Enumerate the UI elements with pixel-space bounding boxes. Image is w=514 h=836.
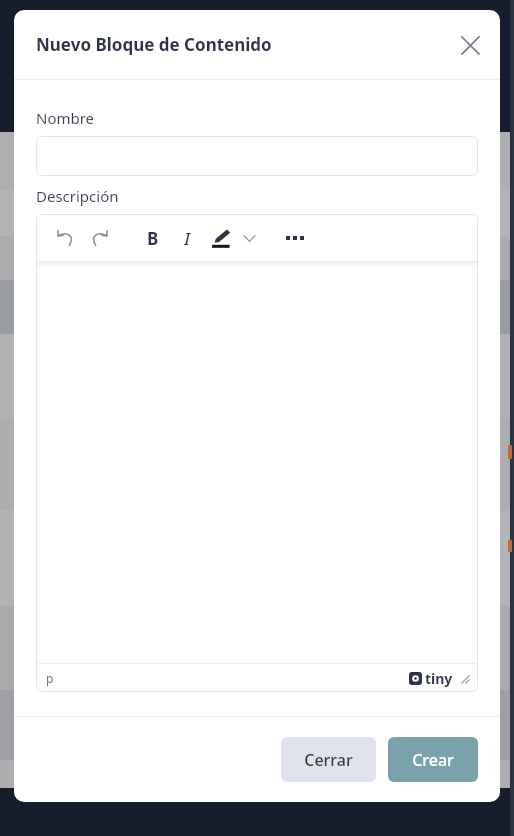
button[interactable]: Color de resaltado — [204, 221, 238, 255]
button[interactable]: Más opciones — [278, 221, 312, 255]
button[interactable]: Crear — [388, 737, 478, 782]
staticText: I — [184, 227, 191, 250]
staticText: B — [147, 227, 159, 250]
button[interactable]: Cursiva — [170, 221, 204, 255]
button[interactable]: Negrita — [136, 221, 170, 255]
button[interactable] — [36, 136, 478, 176]
staticText: Cerrar — [304, 749, 353, 771]
staticText: p — [46, 670, 54, 686]
button[interactable]: Cerrar — [450, 25, 490, 65]
button[interactable]: Deshacer — [48, 221, 82, 255]
button[interactable]: Rehacer — [82, 221, 116, 255]
staticText: Nuevo Bloque de Contenido — [36, 33, 272, 56]
button[interactable]: Más colores — [238, 221, 260, 255]
staticText: tiny — [425, 669, 453, 688]
button[interactable]: Cerrar — [281, 737, 376, 782]
staticText: Nombre — [36, 108, 95, 128]
staticText: Crear — [412, 749, 454, 771]
staticText: Descripción — [36, 186, 119, 206]
